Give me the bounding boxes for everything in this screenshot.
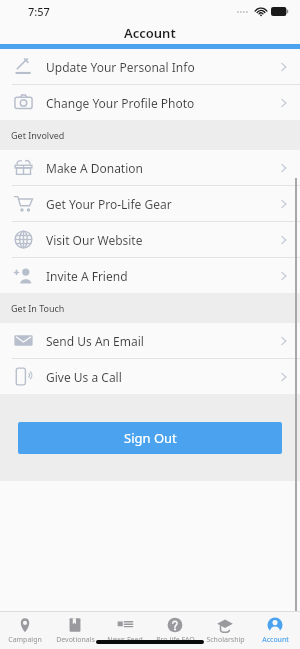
- staticText: Pro-life FAQ: [156, 635, 195, 645]
- staticText: Devotionals: [56, 635, 95, 645]
- staticText: Give Us a Call: [46, 369, 278, 385]
- button[interactable]: Send Us An Email: [0, 323, 300, 358]
- staticText: Scholarship: [206, 635, 245, 645]
- button[interactable]: Sign Out: [18, 422, 282, 454]
- staticText: Account: [124, 24, 176, 42]
- button[interactable]: Account: [250, 612, 300, 649]
- staticText: Change Your Profile Photo: [46, 95, 278, 111]
- staticText: Get Your Pro-Life Gear: [46, 196, 278, 212]
- staticText: Get In Touch: [11, 302, 65, 314]
- staticText: Invite A Friend: [46, 268, 278, 284]
- button[interactable]: News Feed: [100, 612, 150, 649]
- button[interactable]: Change Your Profile Photo: [0, 85, 300, 120]
- button[interactable]: Get Your Pro-Life Gear: [0, 186, 300, 221]
- button[interactable]: Scholarship: [200, 612, 250, 649]
- staticText: Update Your Personal Info: [46, 59, 278, 75]
- button[interactable]: Visit Our Website: [0, 222, 300, 257]
- staticText: News Feed: [107, 635, 143, 645]
- staticText: Visit Our Website: [46, 232, 278, 248]
- staticText: 7:57: [28, 4, 50, 19]
- staticText: Sign Out: [124, 429, 177, 447]
- staticText: Make A Donation: [46, 160, 278, 176]
- button[interactable]: Give Us a Call: [0, 359, 300, 394]
- button[interactable]: Pro-life FAQ: [150, 612, 200, 649]
- staticText: Send Us An Email: [46, 333, 278, 349]
- staticText: Get Involved: [11, 129, 65, 141]
- button[interactable]: Campaign: [0, 612, 50, 649]
- button[interactable]: Make A Donation: [0, 150, 300, 185]
- staticText: Campaign: [8, 635, 42, 645]
- staticText: Account: [262, 635, 289, 645]
- button[interactable]: Invite A Friend: [0, 258, 300, 293]
- button[interactable]: Devotionals: [50, 612, 100, 649]
- button[interactable]: Update Your Personal Info: [0, 49, 300, 84]
